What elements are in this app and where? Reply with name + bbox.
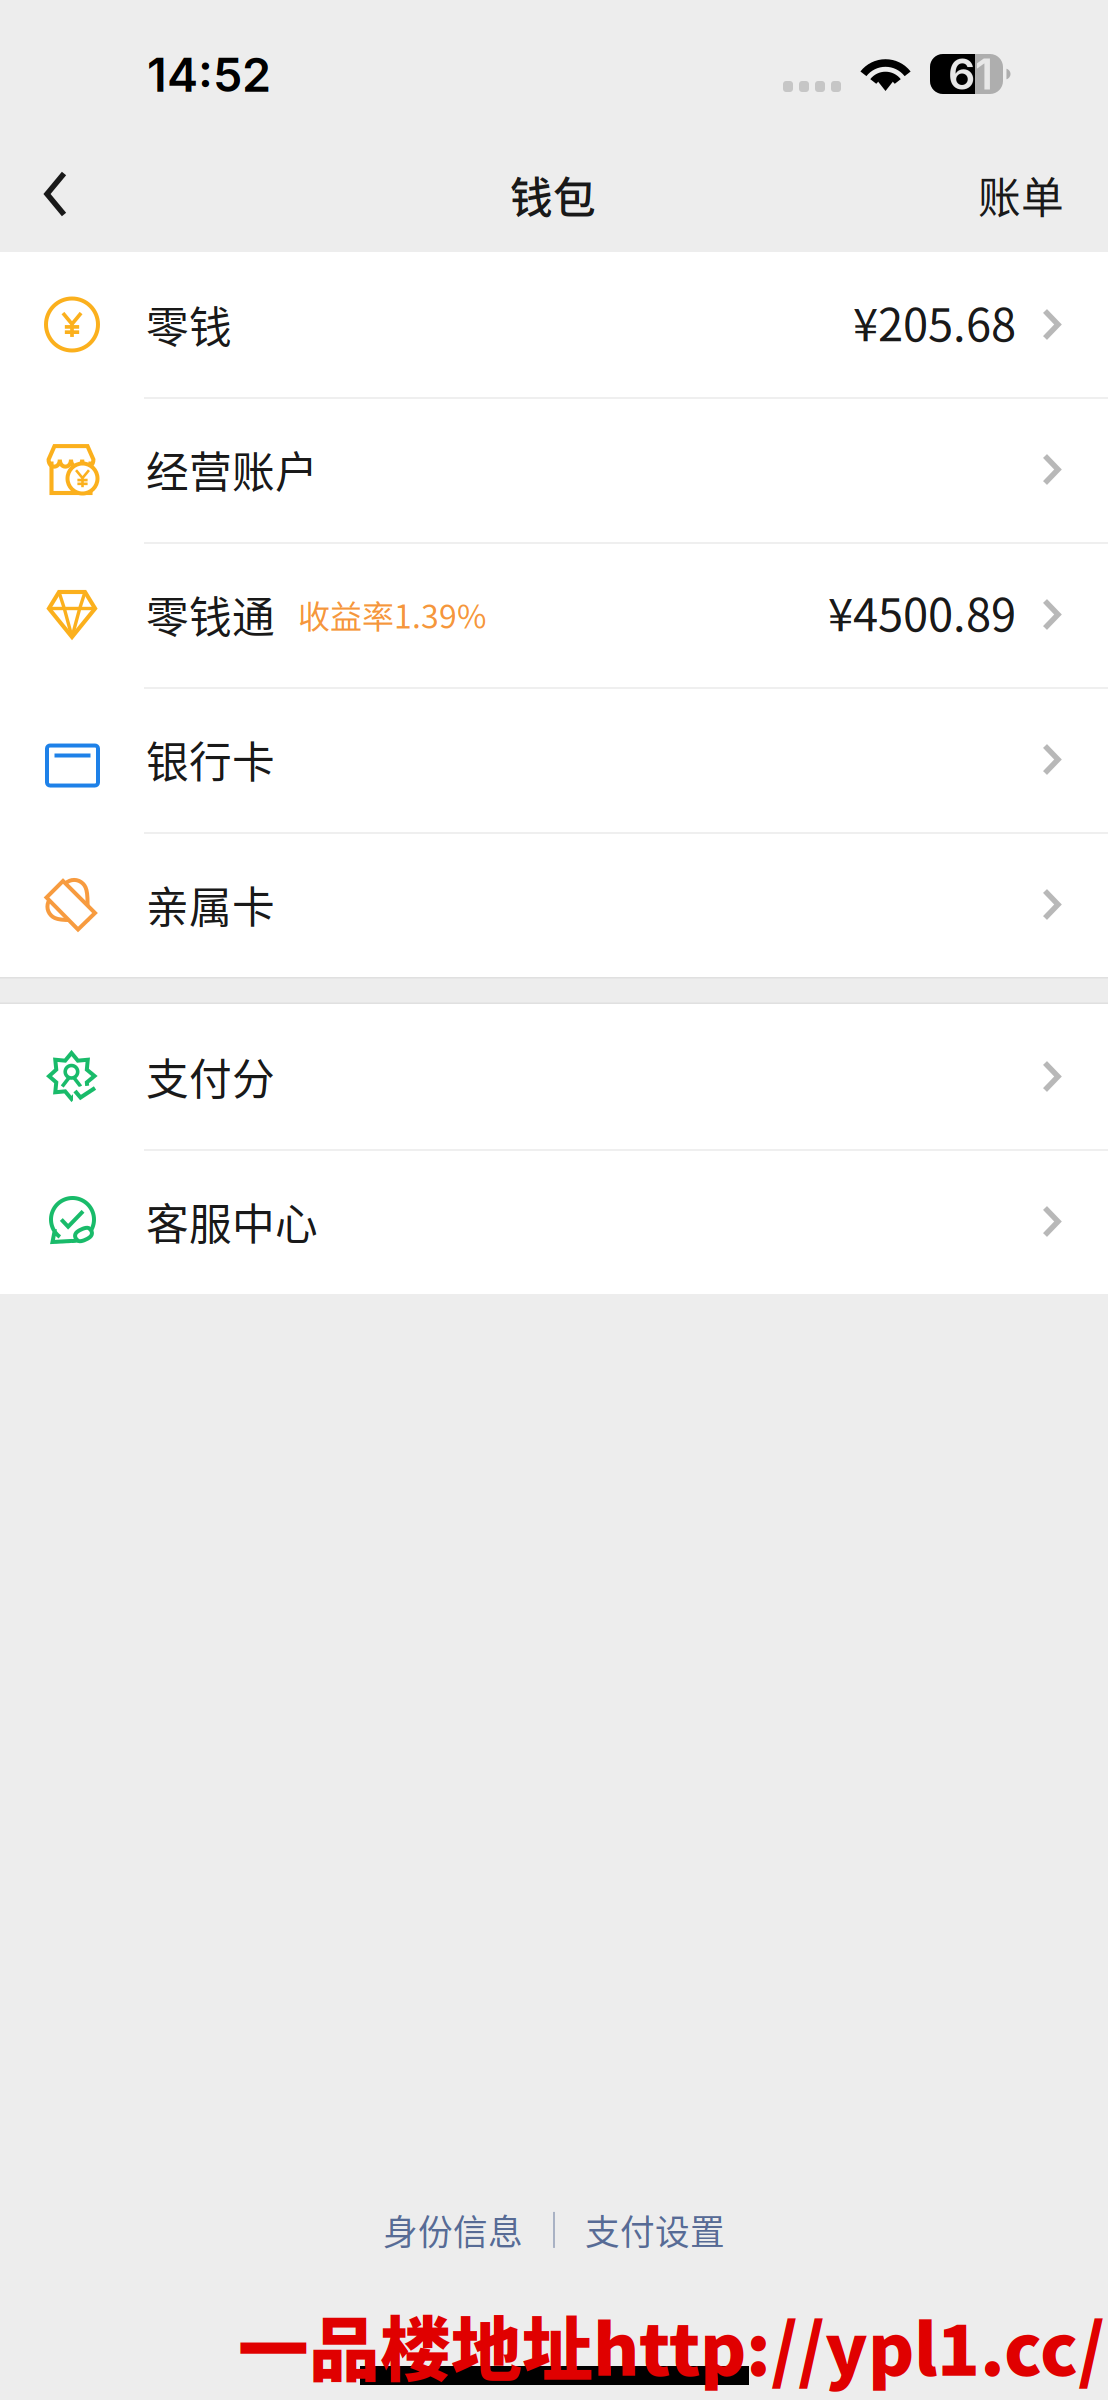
staticText: ¥205.68: [853, 289, 1016, 354]
staticText: 银行卡: [146, 729, 275, 790]
staticText: 钱包: [510, 164, 596, 226]
button[interactable]: Back: [0, 140, 107, 252]
staticText: 经营账户: [146, 439, 318, 500]
button[interactable]: 账单: [938, 140, 1108, 252]
button[interactable]: 银行卡: [0, 687, 1108, 832]
staticText: 支付分: [146, 1046, 275, 1107]
staticText: 亲属卡: [146, 874, 275, 935]
staticText: 零钱通: [146, 584, 275, 645]
staticText: 61: [948, 48, 993, 100]
staticText: 一品楼地址http://ypl1.cc/: [238, 2294, 1105, 2396]
button[interactable]: 身份信息: [383, 2193, 523, 2267]
button[interactable]: 支付设置: [585, 2193, 725, 2267]
button[interactable]: 支付分: [0, 1004, 1108, 1149]
staticText: 身份信息: [383, 2205, 523, 2255]
staticText: 客服中心: [146, 1191, 318, 1252]
staticText: 零钱: [146, 294, 232, 355]
button[interactable]: 零钱通: [0, 542, 1108, 687]
staticText: 收益率1.39%: [298, 591, 486, 638]
staticText: 账单: [978, 164, 1064, 226]
staticText: 支付设置: [585, 2205, 725, 2255]
button[interactable]: 经营账户: [0, 397, 1108, 542]
button[interactable]: 零钱: [0, 252, 1108, 397]
staticText: ¥4500.89: [828, 579, 1016, 644]
button[interactable]: 客服中心: [0, 1149, 1108, 1294]
button[interactable]: 亲属卡: [0, 832, 1108, 977]
staticText: 14:52: [147, 46, 271, 103]
